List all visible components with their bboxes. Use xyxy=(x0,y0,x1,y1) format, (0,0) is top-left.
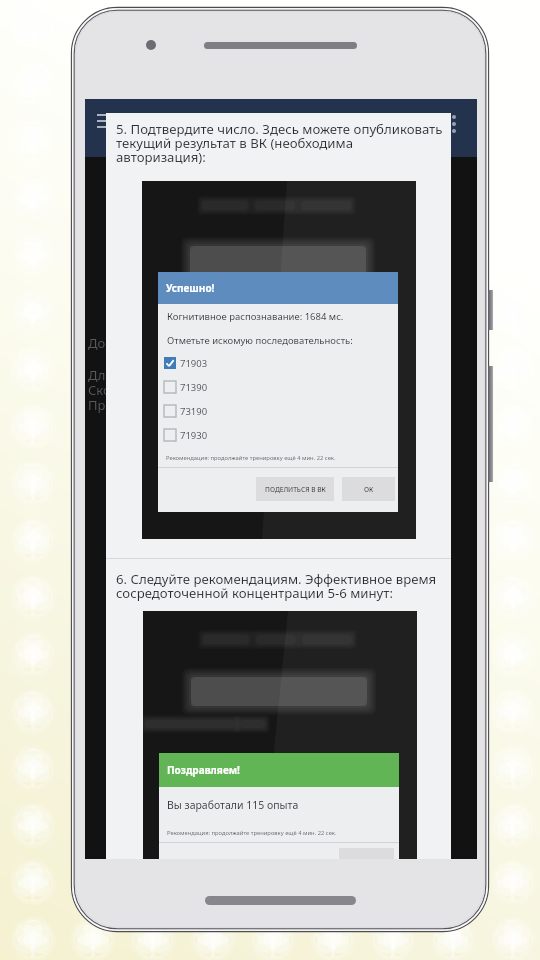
button[interactable]: Open navigation menu xyxy=(97,114,117,134)
staticText: Рекомендация: продолжайте тренировку ещё… xyxy=(166,454,336,462)
staticText: Отметьте искомую последовательность: xyxy=(167,334,353,347)
button[interactable]: 71390 xyxy=(158,376,398,398)
button[interactable]: ОК xyxy=(342,477,395,501)
staticText: ПОДЕЛИТЬСЯ В ВК xyxy=(265,485,326,494)
staticText: 5. Подтвердите число. Здесь можете опубл… xyxy=(116,120,443,166)
staticText: Продвинутый уровень xyxy=(88,396,231,414)
staticText: 71930 xyxy=(180,429,208,442)
button[interactable]: More options xyxy=(445,115,463,139)
staticText: 71390 xyxy=(180,381,208,394)
staticText: ОК xyxy=(364,485,374,494)
button[interactable]: ПОДЕЛИТЬСЯ В ВК xyxy=(256,477,334,501)
staticText: Поздравляем! xyxy=(167,763,240,777)
staticText: Доступные тренировки xyxy=(88,334,236,352)
button[interactable]: 73190 xyxy=(158,400,398,422)
staticText: Рекомендация: продолжайте тренировку ещё… xyxy=(167,829,337,837)
staticText: Для начала рекомендуем xyxy=(88,366,251,384)
staticText: Когнитивное распознавание: 1684 мс. xyxy=(167,310,344,323)
button[interactable]: 71930 xyxy=(158,424,398,446)
button[interactable]: 71903 xyxy=(158,352,398,374)
staticText: 71903 xyxy=(180,357,208,370)
staticText: Успешно! xyxy=(166,281,215,295)
staticText: Вы заработали 115 опыта xyxy=(167,798,299,812)
staticText: 6. Следуйте рекомендациям. Эффективное в… xyxy=(116,570,437,602)
staticText: Скорость реакции xyxy=(88,381,203,399)
staticText: 73190 xyxy=(180,405,208,418)
